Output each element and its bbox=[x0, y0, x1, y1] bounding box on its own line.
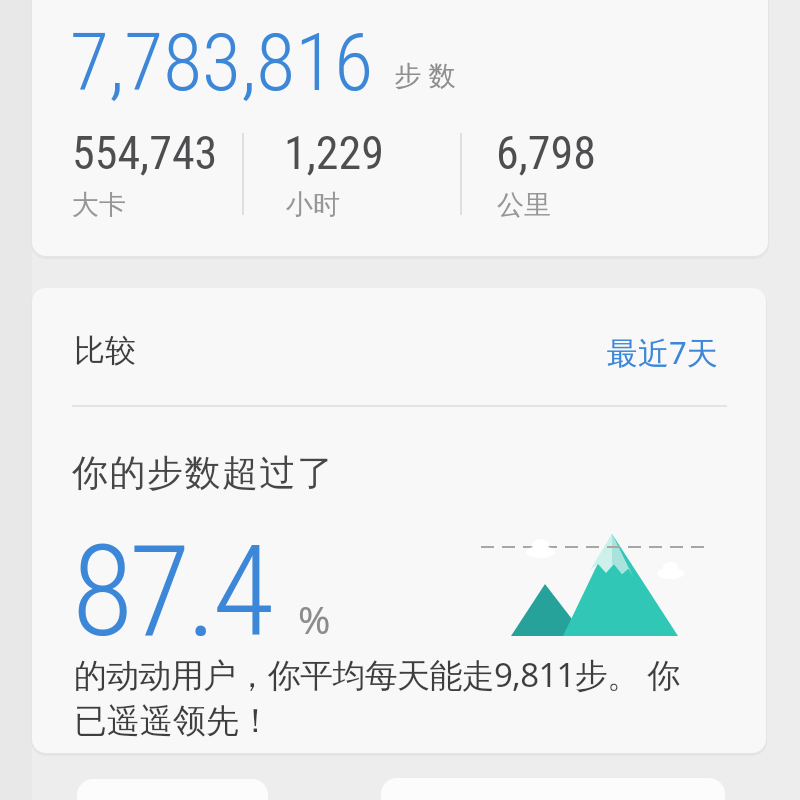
staticText: 最近7天 bbox=[607, 331, 718, 373]
staticText: 已遥遥领先！ bbox=[74, 700, 272, 742]
staticText: 的动动用户，你平均每天能走9,811步。 你 bbox=[74, 652, 680, 697]
button[interactable] bbox=[32, 0, 768, 256]
staticText: 小时 bbox=[286, 188, 340, 222]
staticText: 大卡 bbox=[72, 188, 126, 222]
staticText: 1,229 bbox=[284, 126, 384, 180]
staticText: 554,743 bbox=[72, 126, 218, 180]
staticText: 步数 bbox=[391, 59, 459, 93]
staticText: 你的步数超过了 bbox=[72, 450, 335, 495]
staticText: % bbox=[298, 592, 331, 645]
staticText: 公里 bbox=[497, 188, 551, 222]
staticText: 比较 bbox=[74, 331, 136, 370]
button[interactable] bbox=[32, 288, 766, 753]
staticText: 87.4 bbox=[72, 518, 270, 666]
staticText: 7,783,816 bbox=[70, 16, 374, 110]
staticText: 6,798 bbox=[496, 126, 596, 180]
